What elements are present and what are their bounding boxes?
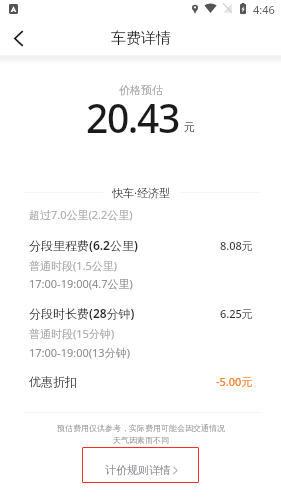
staticText: 4:46	[253, 2, 275, 17]
button[interactable]: Back	[0, 20, 36, 56]
staticText: 普通时段(15分钟)	[29, 326, 115, 341]
staticText: 普通时段(1.5公里)	[29, 258, 118, 273]
staticText: 元	[184, 120, 195, 134]
staticText: 优惠折扣	[29, 374, 77, 389]
staticText: 分段时长费(28分钟)	[29, 305, 135, 321]
staticText: 预估费用仅供参考，实际费用可能会因交通情况 天气因素而不同	[57, 423, 225, 445]
staticText: 6.25元	[220, 306, 253, 321]
button[interactable]: 计价规则详情	[82, 447, 199, 483]
staticText: 计价规则详情	[105, 463, 171, 477]
staticText: 20.43	[86, 91, 179, 144]
staticText: 8.08元	[220, 238, 253, 253]
staticText: -5.00元	[216, 374, 253, 389]
button[interactable]: 分段里程费(6.2公里)	[0, 237, 281, 253]
staticText: 价格预估	[119, 83, 163, 97]
staticText: 快车·经济型	[112, 185, 170, 200]
staticText: 车费详情	[111, 29, 171, 48]
staticText: 分段里程费(6.2公里)	[29, 237, 138, 253]
button[interactable]: 分段时长费(28分钟)	[0, 305, 281, 321]
staticText: 17:00-19:00(13分钟)	[29, 345, 130, 360]
staticText: 超过7.0公里(2.2公里)	[29, 207, 133, 222]
button[interactable]: 优惠折扣	[0, 374, 281, 389]
staticText: 17:00-19:00(4.7公里)	[29, 276, 133, 291]
